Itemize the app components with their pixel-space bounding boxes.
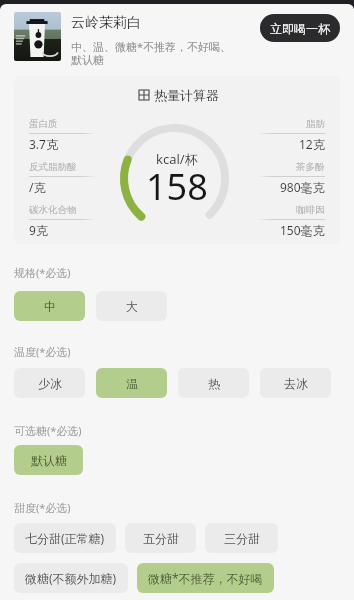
staticText: 9克 bbox=[29, 222, 48, 238]
staticText: 甜度(*必选) bbox=[14, 500, 71, 515]
staticText: 158 bbox=[146, 162, 208, 211]
button[interactable]: 去冰 bbox=[260, 368, 331, 398]
staticText: 默认糖 bbox=[31, 453, 67, 468]
staticText: 五分甜 bbox=[143, 531, 179, 546]
staticText: 3.7克 bbox=[29, 136, 58, 152]
staticText: 立即喝一杯 bbox=[270, 21, 330, 36]
button[interactable]: 七分甜(正常糖) bbox=[14, 523, 116, 553]
staticText: 微糖(不额外加糖) bbox=[25, 570, 117, 586]
button[interactable]: 默认糖 bbox=[14, 445, 83, 475]
button[interactable]: 三分甜 bbox=[205, 523, 278, 553]
button[interactable]: 微糖(不额外加糖) bbox=[14, 563, 128, 593]
button[interactable]: 温 bbox=[96, 368, 167, 398]
staticText: 蛋白质 bbox=[29, 118, 58, 130]
staticText: 茶多酚 bbox=[296, 161, 325, 173]
staticText: 去冰 bbox=[284, 376, 308, 391]
button[interactable]: 少冰 bbox=[14, 368, 85, 398]
button[interactable]: 热 bbox=[178, 368, 249, 398]
button[interactable]: 微糖*不推荐，不好喝 bbox=[137, 563, 274, 593]
button[interactable]: 立即喝一杯 bbox=[260, 14, 340, 42]
staticText: 可选糖(*必选) bbox=[14, 423, 82, 438]
staticText: 三分甜 bbox=[224, 531, 260, 546]
staticText: 热 bbox=[208, 376, 220, 391]
staticText: 脂肪 bbox=[306, 118, 325, 130]
staticText: 中 bbox=[44, 299, 56, 314]
staticText: 150毫克 bbox=[280, 222, 325, 238]
staticText: 980毫克 bbox=[280, 179, 325, 195]
staticText: 少冰 bbox=[38, 376, 62, 391]
staticText: 中、温、微糖*不推荐，不好喝、默认糖 bbox=[71, 39, 233, 68]
staticText: 碳水化合物 bbox=[29, 204, 77, 216]
staticText: 反式脂肪酸 bbox=[29, 161, 77, 173]
staticText: 规格(*必选) bbox=[14, 265, 71, 280]
staticText: 12克 bbox=[299, 136, 325, 152]
staticText: 微糖*不推荐，不好喝 bbox=[148, 570, 263, 586]
staticText: 温度(*必选) bbox=[14, 344, 71, 359]
staticText: 温 bbox=[126, 376, 138, 391]
button[interactable]: 五分甜 bbox=[125, 523, 196, 553]
staticText: 热量计算器 bbox=[154, 87, 219, 103]
staticText: 大 bbox=[126, 299, 138, 314]
staticText: /克 bbox=[29, 179, 46, 195]
staticText: 咖啡因 bbox=[296, 204, 325, 216]
staticText: 七分甜(正常糖) bbox=[25, 530, 105, 546]
button[interactable]: 大 bbox=[96, 291, 167, 321]
button[interactable]: 中 bbox=[14, 291, 85, 321]
staticText: 云岭茉莉白 bbox=[71, 14, 141, 32]
staticText: kcal/杯 bbox=[156, 150, 198, 168]
